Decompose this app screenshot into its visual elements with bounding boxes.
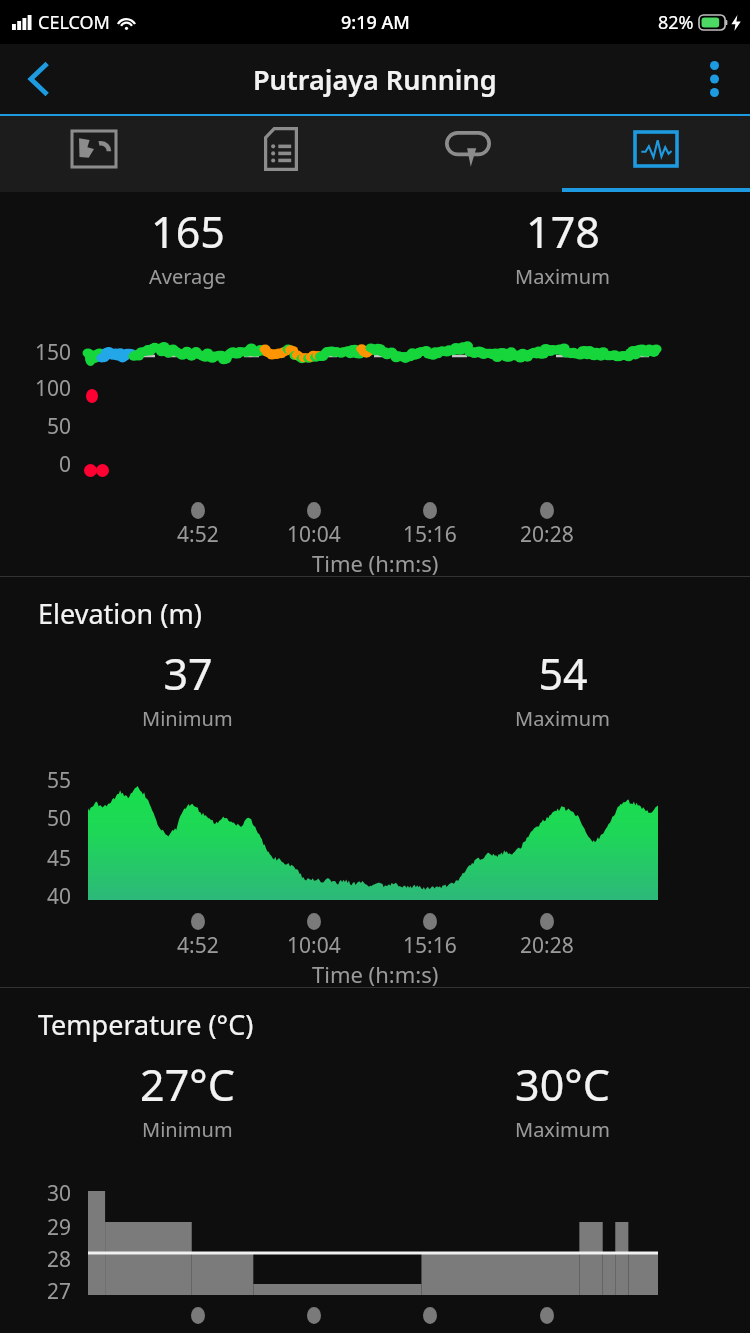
staticText: CELCOM xyxy=(38,10,110,35)
staticText: 165 xyxy=(151,202,225,261)
staticText: 15:16 xyxy=(403,931,457,960)
button[interactable]: Back xyxy=(0,44,78,114)
staticText: 45 xyxy=(47,844,72,873)
staticText: Maximum xyxy=(515,1116,610,1143)
staticText: 10:04 xyxy=(287,520,341,549)
staticText: 9:19 AM xyxy=(341,10,410,35)
staticText: 4:52 xyxy=(177,931,219,960)
staticText: 50 xyxy=(47,412,72,441)
staticText: 30 xyxy=(47,1179,72,1208)
staticText: Maximum xyxy=(515,263,610,290)
staticText: 55 xyxy=(47,766,72,795)
staticText: 54 xyxy=(538,644,588,703)
staticText: Minimum xyxy=(142,1116,233,1143)
staticText: 40 xyxy=(47,882,72,911)
button[interactable]: Map xyxy=(0,116,187,192)
staticText: 178 xyxy=(526,202,600,261)
staticText: Minimum xyxy=(142,705,233,732)
staticText: 150 xyxy=(35,338,72,367)
staticText: 20:28 xyxy=(520,931,574,960)
staticText: 20:28 xyxy=(520,520,574,549)
staticText: Average xyxy=(149,263,226,290)
staticText: 82% xyxy=(658,10,694,35)
staticText: 15:16 xyxy=(403,520,457,549)
staticText: 27 xyxy=(47,1277,72,1306)
staticText: Time (h:m:s) xyxy=(312,959,439,989)
staticText: 28 xyxy=(47,1245,72,1274)
staticText: 100 xyxy=(35,374,72,403)
staticText: 4:52 xyxy=(177,520,219,549)
staticText: 30°C xyxy=(515,1055,610,1114)
staticText: Elevation (m) xyxy=(38,595,202,632)
staticText: Putrajaya Running xyxy=(253,61,497,98)
staticText: 27°C xyxy=(140,1055,235,1114)
staticText: 29 xyxy=(47,1213,72,1242)
staticText: 37 xyxy=(163,644,213,703)
staticText: Maximum xyxy=(515,705,610,732)
button[interactable]: Laps xyxy=(374,116,562,192)
button[interactable]: More options xyxy=(678,44,750,114)
staticText: Temperature (°C) xyxy=(38,1006,254,1043)
staticText: 50 xyxy=(47,804,72,833)
staticText: Time (h:m:s) xyxy=(312,548,439,578)
staticText: 0 xyxy=(59,450,72,479)
button[interactable]: Summary xyxy=(187,116,374,192)
button[interactable]: Charts xyxy=(562,116,750,192)
staticText: 10:04 xyxy=(287,931,341,960)
